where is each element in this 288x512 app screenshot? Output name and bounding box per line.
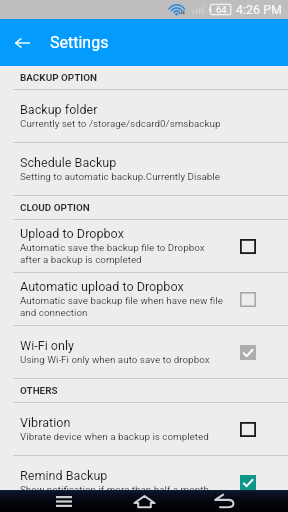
staticText: Vibrate device when a backup is complete… bbox=[20, 431, 209, 443]
staticText: Setting to automatic backup.Currently Di… bbox=[20, 171, 220, 183]
button[interactable]: Back bbox=[184, 490, 264, 512]
staticText: Backup folder bbox=[20, 102, 98, 117]
button[interactable]: Navigate up bbox=[0, 19, 44, 66]
staticText: Automatic save the backup file to Dropbo… bbox=[20, 242, 225, 266]
button[interactable]: Toggle bbox=[240, 475, 256, 490]
button[interactable]: Backup folder bbox=[0, 90, 288, 143]
staticText: BACKUP OPTION bbox=[20, 72, 97, 84]
staticText: CLOUD OPTION bbox=[20, 202, 90, 214]
staticText: Settings bbox=[50, 33, 109, 52]
button[interactable]: Schedule Backup bbox=[0, 143, 288, 196]
button[interactable]: Vibration bbox=[0, 403, 288, 456]
staticText: Vibration bbox=[20, 415, 71, 430]
staticText: Automatic save backup file when have new… bbox=[20, 295, 225, 319]
button[interactable]: Automatic upload to Dropbox bbox=[0, 273, 288, 326]
staticText: 64 bbox=[216, 4, 227, 15]
staticText: OTHERS bbox=[20, 385, 58, 397]
staticText: 4:26 PM bbox=[236, 2, 283, 17]
staticText: Wi-Fi only bbox=[20, 338, 75, 353]
button[interactable]: Toggle bbox=[240, 292, 256, 307]
button[interactable]: Toggle bbox=[240, 345, 256, 360]
button[interactable]: Wi-Fi only bbox=[0, 326, 288, 379]
staticText: Using Wi-Fi only when auto save to dropb… bbox=[20, 354, 210, 366]
staticText: Remind Backup bbox=[20, 468, 108, 483]
staticText: Currently set to /storage/sdcard0/smsbac… bbox=[20, 118, 221, 130]
button[interactable]: Remind Backup bbox=[0, 456, 288, 509]
staticText: Show notification if more than half a mo… bbox=[20, 484, 209, 496]
button[interactable]: Toggle bbox=[240, 239, 256, 254]
staticText: Automatic upload to Dropbox bbox=[20, 279, 184, 294]
button[interactable]: Home bbox=[104, 490, 184, 512]
button[interactable]: Upload to Dropbox bbox=[0, 220, 288, 273]
staticText: Schedule Backup bbox=[20, 155, 117, 170]
button[interactable]: Toggle bbox=[240, 422, 256, 437]
button[interactable]: Recent apps bbox=[24, 490, 104, 512]
staticText: Upload to Dropbox bbox=[20, 226, 124, 241]
